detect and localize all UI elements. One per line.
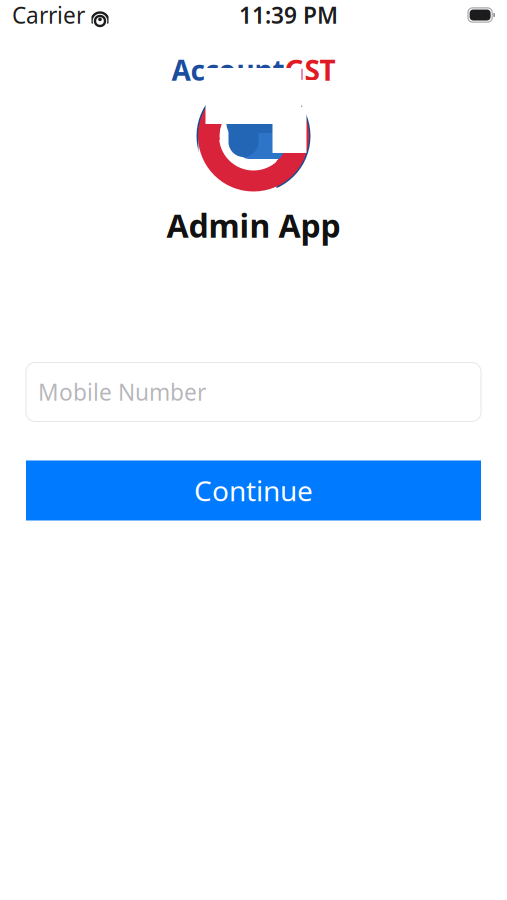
staticText: Continue [194, 472, 313, 509]
staticText: Admin App [166, 204, 340, 246]
staticText: 11:39 PM [239, 0, 338, 30]
staticText: Account [171, 51, 284, 89]
staticText: GST [284, 51, 335, 89]
button[interactable]: Mobile Number [26, 362, 481, 421]
staticText: Mobile Number [38, 377, 206, 407]
staticText: Carrier [12, 0, 85, 30]
button[interactable]: Continue [26, 460, 481, 520]
